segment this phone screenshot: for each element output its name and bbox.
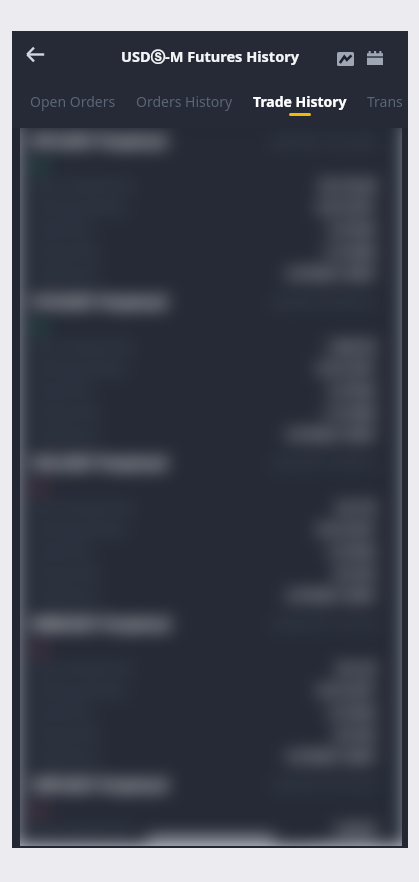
staticText: USDⓈ-M Futures History bbox=[121, 46, 299, 66]
staticText: Open Orders bbox=[30, 92, 116, 111]
staticText: 1,823.55 bbox=[326, 338, 376, 355]
staticText: 0.018327 USDT bbox=[287, 265, 376, 282]
staticText: Sell bbox=[30, 641, 49, 656]
button[interactable]: Back bbox=[18, 37, 52, 71]
staticText: 0.012 BTC bbox=[317, 199, 376, 216]
staticText: 0.21043 bbox=[329, 221, 376, 238]
staticText: +12.3456 bbox=[322, 243, 376, 260]
staticText: Orders History bbox=[136, 92, 233, 111]
staticText: 0.018327 USDT bbox=[287, 587, 376, 604]
button[interactable]: Orders History bbox=[136, 79, 233, 113]
staticText: Sell bbox=[30, 480, 49, 495]
button[interactable]: Transaction bbox=[367, 79, 408, 113]
staticText: 0.21043 bbox=[329, 704, 376, 721]
staticText: Transaction bbox=[367, 92, 408, 111]
staticText: SOLUSDT Perpetual bbox=[32, 453, 167, 472]
staticText: -8.2104 bbox=[332, 726, 376, 743]
staticText: 0.21043 bbox=[329, 382, 376, 399]
staticText: Buy bbox=[30, 158, 50, 173]
staticText: BNBUSDT Perpetual bbox=[32, 614, 171, 633]
staticText: Trade History bbox=[253, 92, 347, 111]
staticText: 0.018327 USDT bbox=[287, 748, 376, 765]
button[interactable]: Open Orders bbox=[30, 79, 116, 113]
staticText: Avg. Closing Price bbox=[32, 821, 133, 837]
staticText: BTCUSDT Perpetual bbox=[32, 131, 167, 150]
staticText: +12.3456 bbox=[322, 404, 376, 421]
staticText: 29,123.40 bbox=[319, 177, 376, 194]
staticText: 24.718 bbox=[336, 499, 376, 516]
staticText: -8.2104 bbox=[332, 565, 376, 582]
staticText: Closing Quantity bbox=[32, 840, 126, 846]
staticText: XRPUSDT Perpetual bbox=[32, 775, 168, 794]
staticText: 0.012 BTC bbox=[317, 840, 376, 846]
staticText: ETHUSDT Perpetual bbox=[32, 292, 167, 311]
staticText: 0.012 BTC bbox=[317, 521, 376, 538]
button[interactable]: Calendar bbox=[358, 41, 392, 75]
button[interactable]: Chart bbox=[328, 42, 362, 76]
staticText: 241.30 bbox=[336, 660, 376, 677]
button[interactable]: Trade History bbox=[253, 79, 347, 116]
staticText: 0.012 BTC bbox=[317, 682, 376, 699]
staticText: 0.012 BTC bbox=[317, 360, 376, 377]
staticText: 0.21043 bbox=[329, 543, 376, 560]
staticText: Buy bbox=[30, 319, 50, 334]
staticText: 0.6418 bbox=[336, 821, 376, 838]
staticText: 0.018327 USDT bbox=[287, 426, 376, 443]
